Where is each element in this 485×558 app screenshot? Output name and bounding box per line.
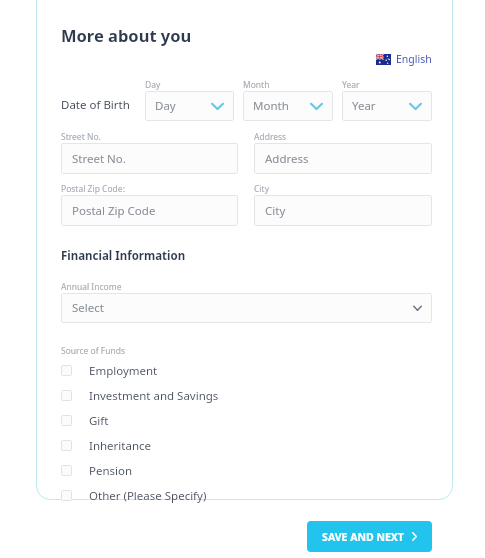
button[interactable]: Inheritance: [61, 433, 432, 458]
staticText: Day: [155, 98, 211, 114]
staticText: Postal Zip Code:: [61, 183, 125, 195]
button[interactable]: Investment and Savings: [61, 383, 432, 408]
button[interactable]: Day: [145, 91, 234, 121]
staticText: English: [396, 52, 432, 66]
staticText: Investment and Savings: [89, 388, 219, 404]
staticText: Address: [265, 151, 309, 167]
staticText: Day: [145, 79, 161, 91]
button[interactable]: Month: [243, 91, 333, 121]
staticText: Inheritance: [89, 438, 152, 454]
staticText: Financial Information: [61, 248, 186, 264]
staticText: SAVE AND NEXT: [322, 530, 404, 544]
staticText: Pension: [89, 463, 133, 479]
button[interactable]: City: [254, 195, 432, 226]
staticText: Gift: [89, 413, 109, 429]
button[interactable]: Gift: [61, 408, 432, 433]
staticText: Annual Income: [61, 281, 122, 293]
staticText: Other (Please Specify): [89, 488, 207, 504]
staticText: Date of Birth: [61, 97, 130, 113]
staticText: Street No.: [61, 131, 101, 143]
button[interactable]: Select: [61, 293, 432, 323]
staticText: Address: [254, 131, 287, 143]
button[interactable]: Pension: [61, 458, 432, 483]
staticText: More about you: [61, 24, 192, 46]
button[interactable]: Employment: [61, 358, 432, 383]
button[interactable]: Postal Zip Code: [61, 195, 238, 226]
staticText: Year: [342, 79, 360, 91]
button[interactable]: SAVE AND NEXT: [307, 521, 432, 552]
button[interactable]: Other (Please Specify): [61, 483, 432, 508]
staticText: City: [265, 203, 286, 219]
staticText: Year: [352, 98, 409, 114]
staticText: Postal Zip Code: [72, 203, 156, 219]
staticText: Employment: [89, 363, 158, 379]
button[interactable]: English: [376, 50, 432, 68]
staticText: Month: [253, 98, 310, 114]
staticText: Street No.: [72, 151, 126, 167]
staticText: Source of Funds: [61, 345, 125, 357]
staticText: Select: [72, 300, 413, 316]
staticText: City: [254, 183, 269, 195]
button[interactable]: Address: [254, 143, 432, 174]
button[interactable]: Street No.: [61, 143, 238, 174]
staticText: Month: [243, 79, 270, 91]
button[interactable]: Year: [342, 91, 432, 121]
